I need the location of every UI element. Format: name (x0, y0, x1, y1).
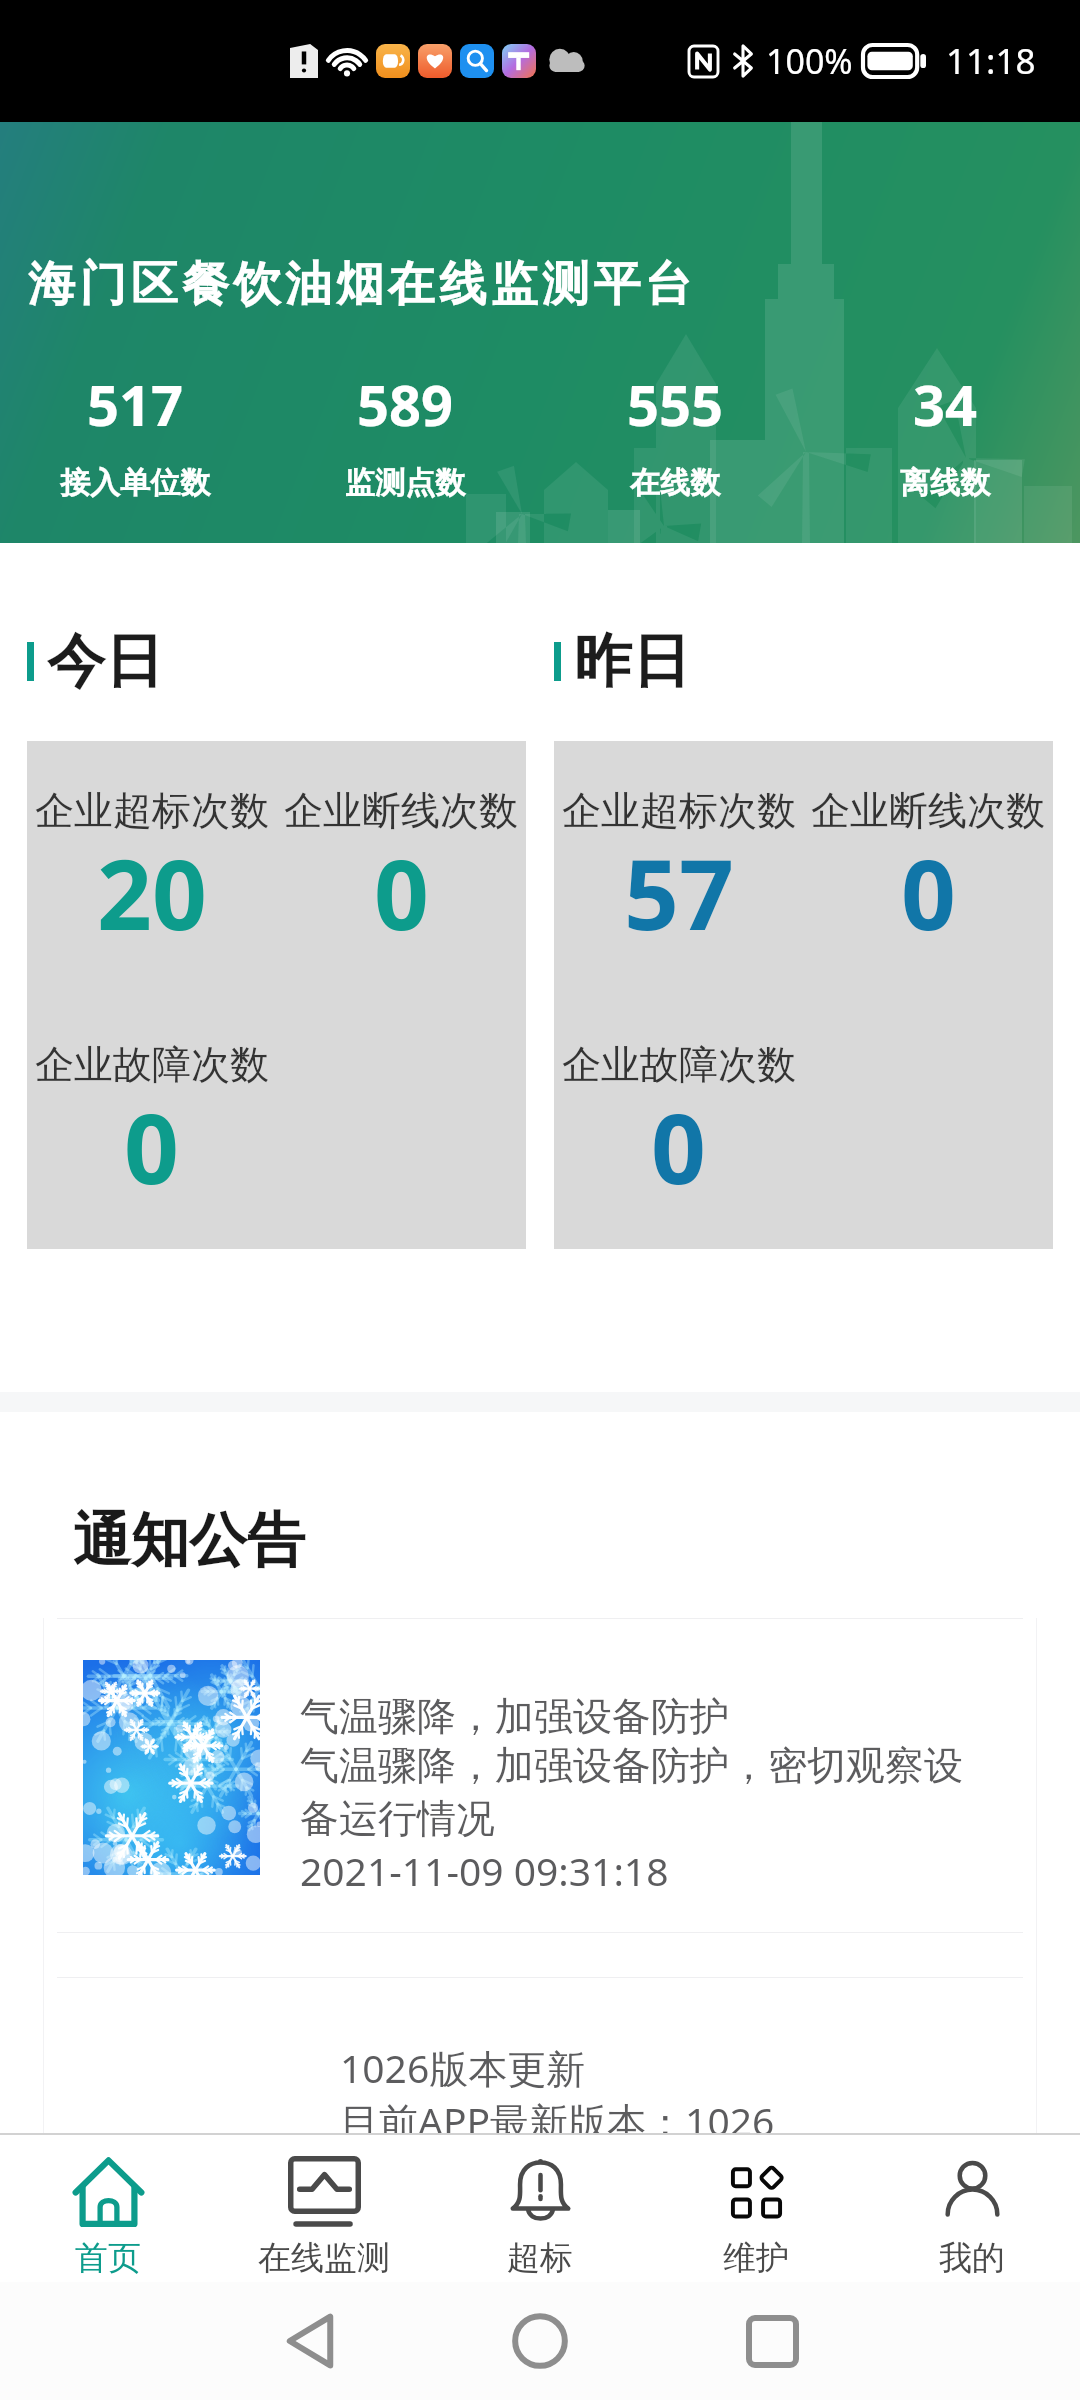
button[interactable]: 517 (0, 366, 270, 502)
staticText: 昨日 (574, 625, 690, 698)
button[interactable]: 昨日 (527, 625, 1054, 698)
button[interactable]: 34 (810, 366, 1080, 502)
staticText: 0 (124, 1081, 179, 1212)
staticText: 517 (87, 366, 184, 442)
button[interactable]: Back (254, 2285, 366, 2397)
staticText: 气温骤降，加强设备防护，密切观察设备运行情况 (300, 1741, 972, 1844)
staticText: 2021-11-09 09:31:18 (300, 1844, 669, 1897)
staticText: 1026版本更新 (340, 2041, 586, 2094)
staticText: 我的 (939, 2237, 1005, 2279)
staticText: 离线数 (900, 464, 990, 502)
button[interactable]: 我的 (864, 2133, 1080, 2282)
button[interactable]: 超标 (432, 2133, 648, 2282)
staticText: 海门区餐饮油烟在线监测平台 (28, 255, 697, 314)
staticText: 在线监测 (258, 2237, 390, 2279)
staticText: 企业断线次数 (811, 786, 1045, 835)
button[interactable]: 企业超标次数 (554, 741, 1053, 1249)
button[interactable]: 首页 (0, 2133, 216, 2282)
staticText: 气温骤降，加强设备防护 (300, 1692, 729, 1741)
button[interactable]: 维护 (648, 2133, 864, 2282)
button[interactable]: Home (484, 2285, 596, 2397)
staticText: 0 (901, 827, 956, 958)
button[interactable]: 555 (540, 366, 810, 502)
button[interactable]: 企业超标次数 (27, 741, 526, 1249)
button[interactable]: 1026版本更新 (0, 1978, 1080, 2147)
staticText: 0 (651, 1081, 706, 1212)
staticText: 维护 (723, 2237, 789, 2279)
staticText: 34 (913, 366, 978, 442)
button[interactable]: 589 (270, 366, 540, 502)
staticText: 11:18 (946, 37, 1036, 85)
staticText: 555 (627, 366, 724, 442)
staticText: 首页 (75, 2237, 141, 2279)
staticText: 企业超标次数 (35, 786, 269, 835)
staticText: 20 (97, 827, 207, 958)
staticText: 100% (766, 38, 853, 84)
staticText: 57 (624, 827, 734, 958)
button[interactable]: 今日 (0, 625, 527, 698)
staticText: 通知公告 (73, 1504, 305, 1577)
button[interactable]: 在线监测 (216, 2133, 432, 2282)
staticText: 监测点数 (345, 464, 465, 502)
staticText: 超标 (507, 2237, 573, 2279)
staticText: 今日 (47, 625, 163, 698)
staticText: 企业超标次数 (562, 786, 796, 835)
staticText: 目前APP最新版本：1026 (340, 2094, 775, 2147)
staticText: 企业故障次数 (35, 1040, 269, 1089)
staticText: 企业故障次数 (562, 1040, 796, 1089)
staticText: 589 (357, 366, 454, 442)
button[interactable]: Recents (716, 2285, 828, 2397)
staticText: 在线数 (630, 464, 720, 502)
staticText: 0 (374, 827, 429, 958)
button[interactable]: 气温骤降，加强设备防护 (0, 1619, 1080, 1897)
staticText: 企业断线次数 (284, 786, 518, 835)
staticText: 接入单位数 (60, 464, 210, 502)
